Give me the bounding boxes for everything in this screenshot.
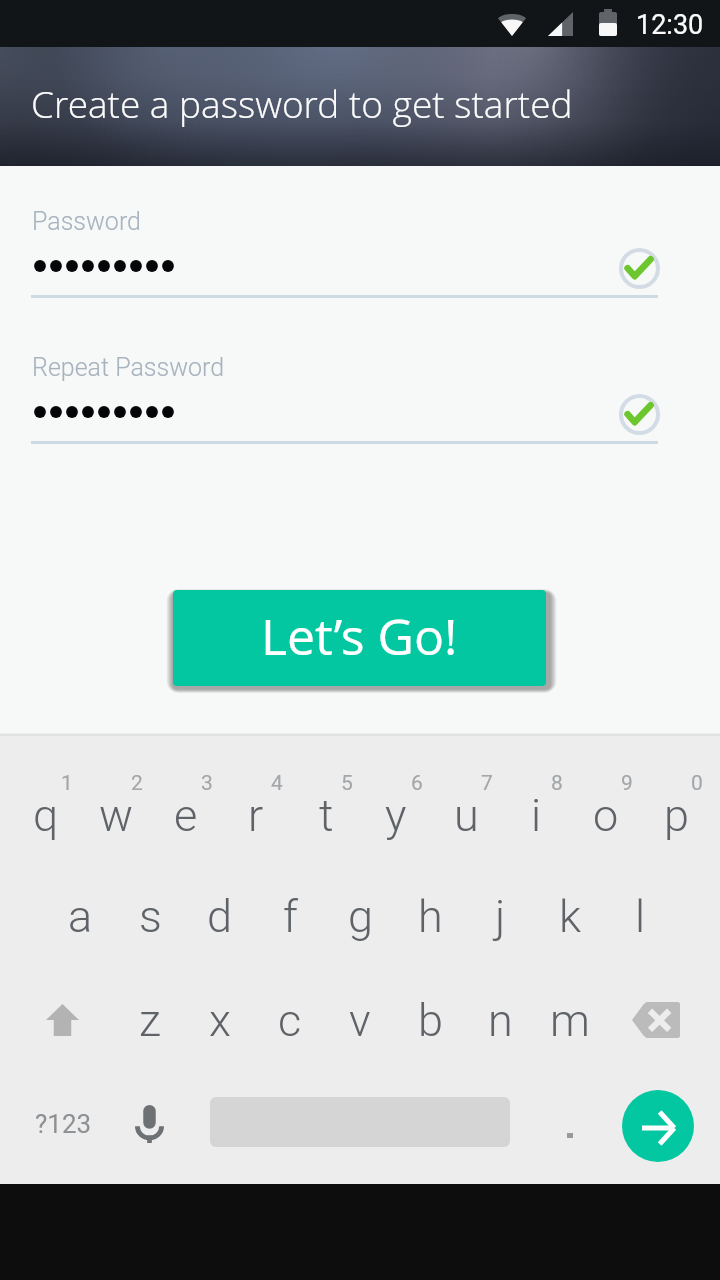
button[interactable]: b (394, 968, 466, 1072)
staticText: s (139, 890, 162, 943)
button[interactable] (500, 752, 572, 856)
button[interactable] (540, 1077, 600, 1171)
staticText: o (593, 789, 619, 842)
button[interactable]: v (324, 968, 396, 1072)
button[interactable]: Backspace (613, 968, 699, 1072)
button[interactable] (570, 752, 642, 856)
button[interactable] (360, 752, 432, 856)
staticText: Repeat Password (32, 353, 225, 382)
button[interactable] (640, 752, 712, 856)
button[interactable]: Voice input (113, 1077, 185, 1171)
button[interactable]: x (184, 968, 256, 1072)
staticText: w (99, 789, 133, 842)
button[interactable]: m (534, 968, 606, 1072)
staticText: l (635, 890, 646, 943)
staticText: a (68, 890, 93, 943)
staticText: z (139, 994, 161, 1047)
staticText: c (278, 994, 302, 1047)
button[interactable] (150, 752, 222, 856)
staticText: 1 (61, 771, 73, 796)
button[interactable] (80, 752, 152, 856)
button[interactable]: a (44, 864, 116, 968)
staticText: p (664, 789, 689, 842)
staticText: 4 (271, 771, 283, 796)
staticText: 0 (691, 771, 703, 796)
button[interactable]: l (604, 864, 676, 968)
staticText: 12:30 (636, 9, 704, 41)
staticText: Let’s Go! (261, 602, 458, 670)
button[interactable]: Let’s Go! (173, 590, 546, 686)
button[interactable]: s (114, 864, 186, 968)
button[interactable] (10, 752, 82, 856)
staticText: m (550, 994, 590, 1047)
staticText: k (559, 890, 582, 943)
button[interactable] (220, 752, 292, 856)
button[interactable]: n (464, 968, 536, 1072)
staticText: 9 (621, 771, 633, 796)
button[interactable]: j (464, 864, 536, 968)
staticText: 6 (411, 771, 423, 796)
staticText: h (418, 890, 443, 943)
staticText: b (418, 994, 443, 1047)
staticText: 8 (551, 771, 563, 796)
staticText: 7 (481, 771, 493, 796)
staticText: 5 (341, 771, 353, 796)
button[interactable]: ?123 (20, 1077, 106, 1171)
staticText: f (283, 890, 298, 943)
staticText: Password (32, 207, 141, 236)
button[interactable]: k (534, 864, 606, 968)
button[interactable]: Enter (622, 1090, 694, 1162)
button[interactable]: h (394, 864, 466, 968)
button[interactable]: d (184, 864, 256, 968)
staticText: Create a password to get started (31, 78, 573, 128)
staticText: d (207, 890, 233, 943)
staticText: j (495, 890, 506, 943)
button[interactable]: Shift (19, 968, 105, 1072)
staticText: u (454, 789, 479, 842)
staticText: t (319, 789, 334, 842)
staticText: 2 (131, 771, 143, 796)
button[interactable] (430, 752, 502, 856)
staticText: y (385, 789, 407, 842)
staticText: x (209, 994, 231, 1047)
staticText: n (488, 994, 513, 1047)
staticText: r (248, 789, 264, 842)
button[interactable] (290, 752, 362, 856)
button[interactable]: g (324, 864, 396, 968)
button[interactable]: f (254, 864, 326, 968)
staticText: g (348, 890, 373, 943)
staticText: ?123 (35, 1109, 92, 1139)
staticText: 3 (201, 771, 213, 796)
button[interactable]: z (114, 968, 186, 1072)
staticText: e (174, 789, 198, 842)
staticText: i (531, 789, 542, 842)
staticText: v (349, 994, 371, 1047)
button[interactable]: c (254, 968, 326, 1072)
staticText: q (33, 789, 59, 842)
